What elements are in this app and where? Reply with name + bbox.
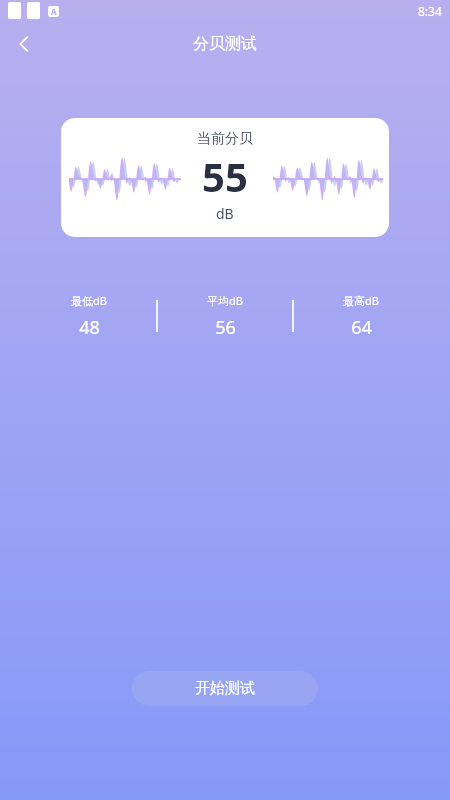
button[interactable]: 平均dB [158,293,292,340]
button[interactable]: Back [0,22,48,66]
staticText: 平均dB [207,293,243,308]
button[interactable]: 最低dB [22,293,156,340]
button[interactable]: 当前分贝 [61,118,389,237]
staticText: 56 [215,315,236,340]
staticText: 8:34 [418,3,442,19]
staticText: 当前分贝 [197,130,253,148]
staticText: 开始测试 [195,679,255,698]
staticText: 分贝测试 [193,34,257,54]
staticText: A [51,6,57,17]
staticText: 最低dB [71,293,107,308]
staticText: 最高dB [343,293,379,308]
button[interactable]: 最高dB [294,293,428,340]
staticText: dB [216,204,234,223]
staticText: 55 [202,149,248,203]
staticText: 48 [79,315,100,340]
button[interactable]: 开始测试 [132,671,318,706]
staticText: 64 [351,315,372,340]
